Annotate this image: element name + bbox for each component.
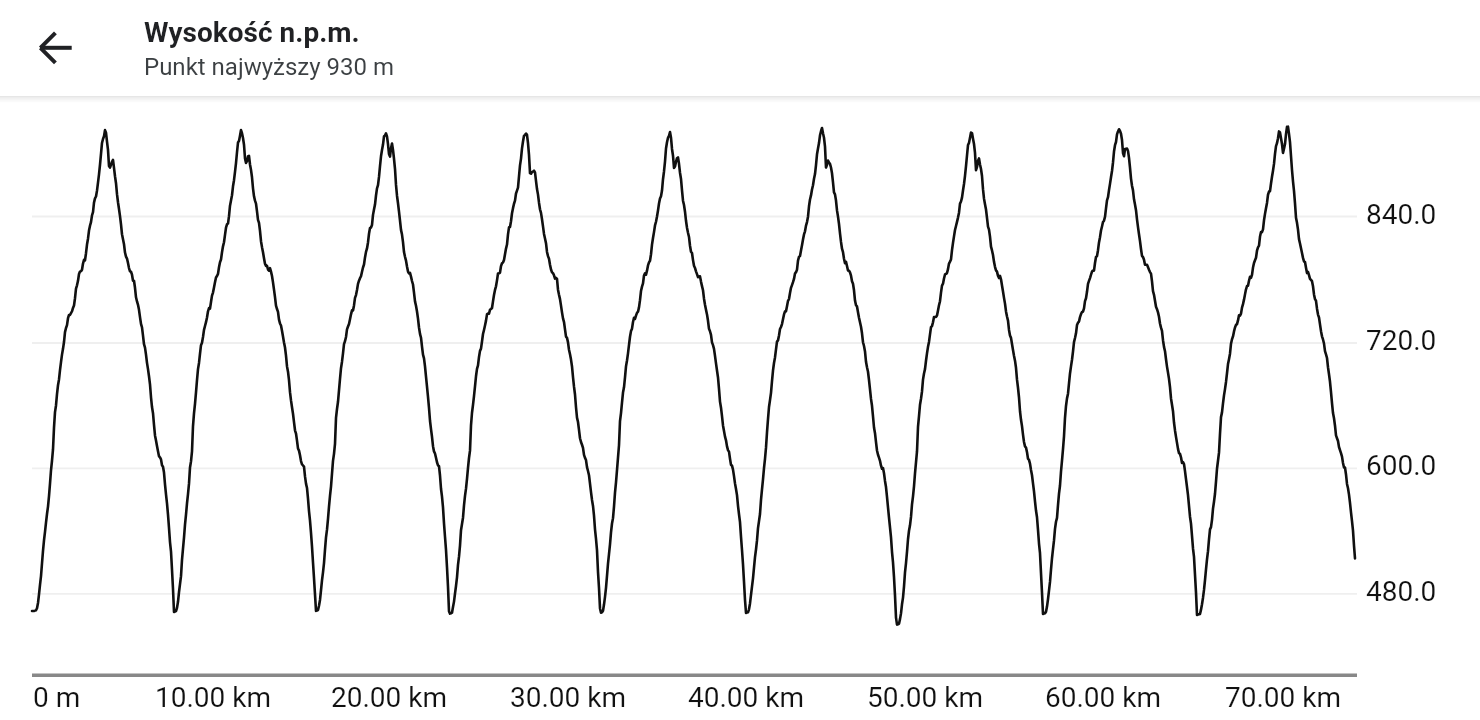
staticText: Wysokość n.p.m. [144, 16, 360, 49]
staticText: 60.00 km [1045, 681, 1162, 714]
staticText: 10.00 km [155, 681, 272, 714]
staticText: 720.0 [1366, 324, 1437, 357]
button[interactable]: Back [24, 24, 72, 72]
staticText: 0 m [33, 681, 81, 714]
staticText: 20.00 km [331, 681, 448, 714]
staticText: 600.0 [1366, 449, 1437, 482]
staticText: 40.00 km [688, 681, 805, 714]
staticText: 480.0 [1366, 575, 1437, 608]
staticText: 50.00 km [867, 681, 984, 714]
staticText: Punkt najwyższy 930 m [144, 53, 395, 81]
staticText: 840.0 [1366, 198, 1437, 231]
staticText: 70.00 km [1225, 681, 1342, 714]
staticText: 30.00 km [510, 681, 627, 714]
